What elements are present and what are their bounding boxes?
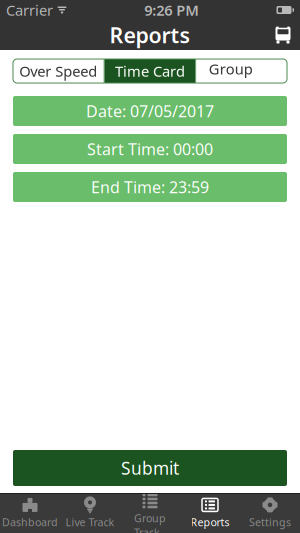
staticText: End Time: 23:59: [91, 176, 209, 198]
button[interactable]: Submit: [13, 450, 287, 486]
staticText: Live Track: [65, 515, 114, 529]
staticText: Start Time: 00:00: [87, 138, 213, 160]
button[interactable]: Reports: [180, 493, 240, 533]
staticText: Over Speed: [19, 61, 97, 81]
staticText: Submit: [121, 456, 179, 479]
staticText: 9:26 PM: [144, 0, 199, 20]
staticText: Reports: [109, 21, 190, 49]
staticText: Carrier: [6, 0, 53, 20]
button[interactable]: Settings: [240, 493, 300, 533]
button[interactable]: Vehicles: [266, 20, 300, 50]
button[interactable]: Time Card: [105, 59, 195, 83]
staticText: Settings: [249, 515, 291, 529]
staticText: Date: 07/05/2017: [86, 100, 214, 122]
button[interactable]: Dashboard: [0, 493, 60, 533]
button[interactable]: Group Summary: [196, 59, 287, 83]
button[interactable]: Date: 07/05/2017: [13, 96, 287, 126]
staticText: Group Track: [134, 511, 166, 533]
button[interactable]: End Time: 23:59: [13, 172, 287, 202]
button[interactable]: Live Track: [60, 493, 120, 533]
staticText: Time Card: [115, 61, 185, 81]
button[interactable]: Start Time: 00:00: [13, 134, 287, 164]
button[interactable]: Group Track: [120, 493, 180, 533]
staticText: Dashboard: [2, 515, 58, 529]
button[interactable]: Over Speed: [13, 59, 104, 83]
staticText: Group Summary: [209, 59, 275, 83]
staticText: Reports: [190, 515, 229, 529]
